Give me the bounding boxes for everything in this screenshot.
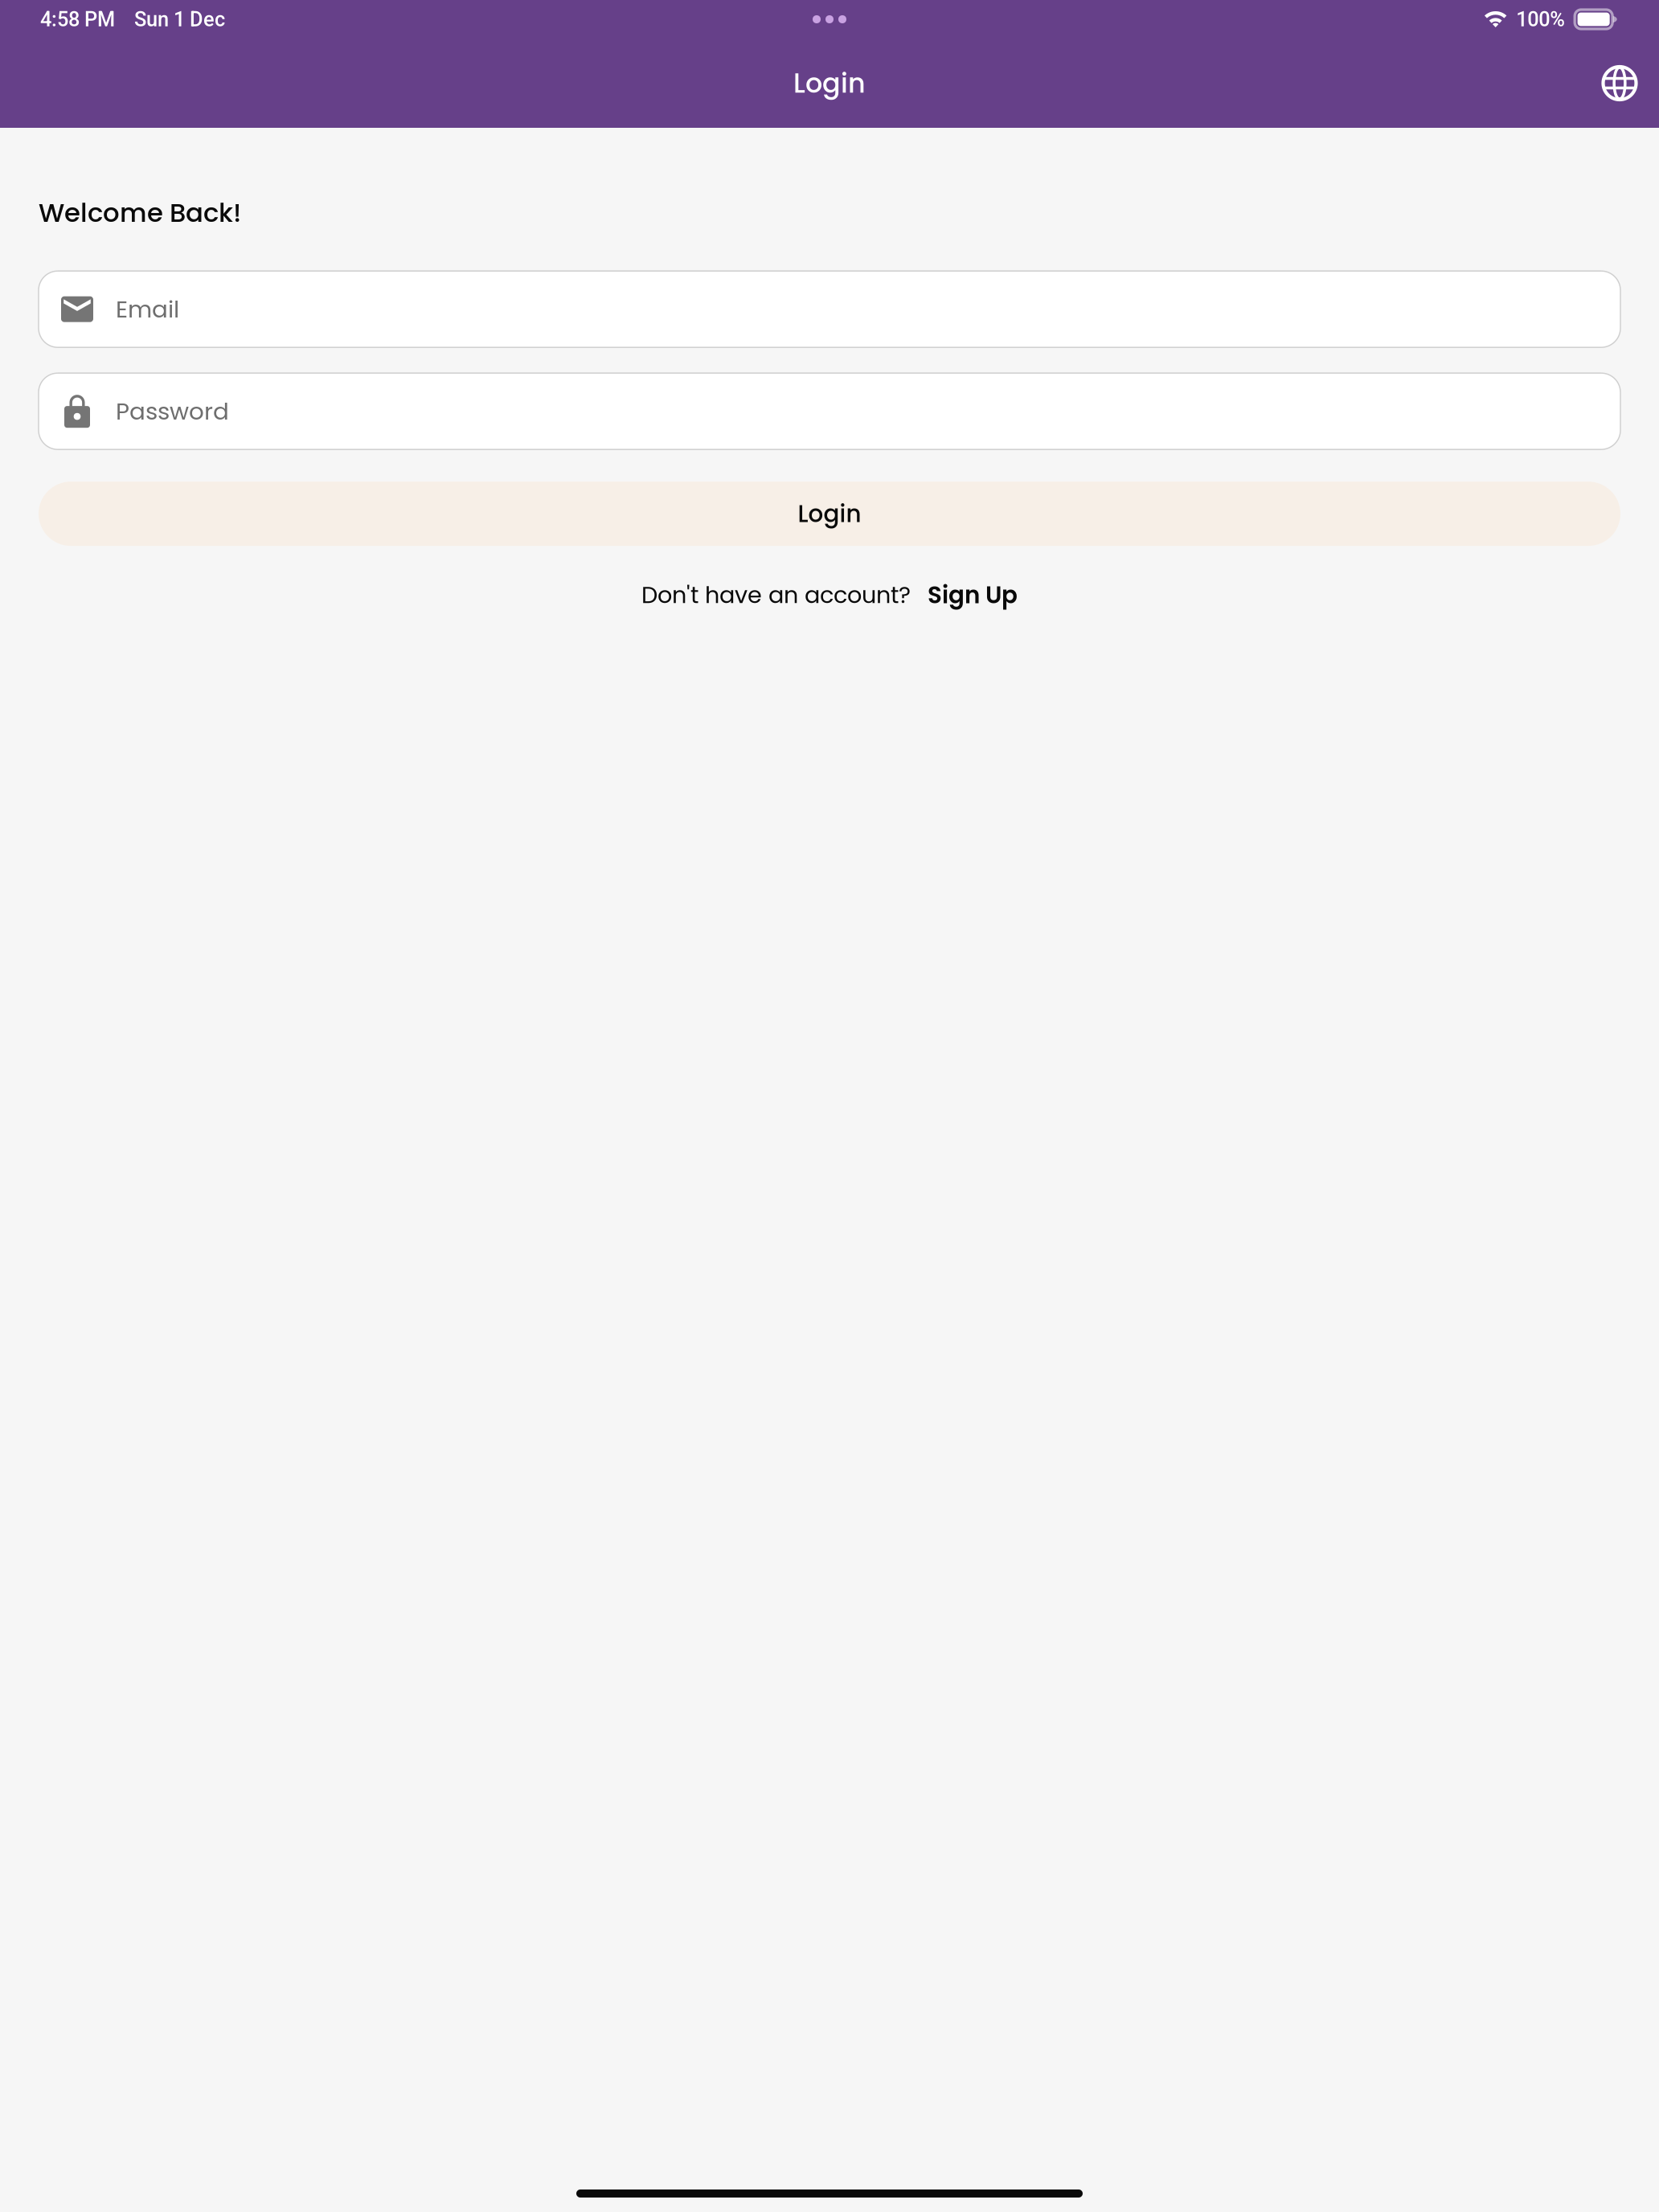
staticText: 4:58 PM — [40, 7, 115, 31]
button[interactable]: Login — [39, 482, 1620, 546]
staticText: Don't have an account? — [641, 579, 911, 611]
staticText: Email — [116, 293, 179, 326]
button[interactable]: Language — [1589, 53, 1650, 114]
staticText: Sign Up — [928, 578, 1018, 611]
staticText: Login — [793, 64, 866, 102]
staticText: Welcome Back! — [39, 195, 241, 231]
staticText: 100% — [1516, 7, 1565, 31]
button[interactable]: Don't have an account? — [39, 575, 1620, 615]
staticText: Password — [116, 395, 229, 428]
staticText: Login — [798, 497, 861, 530]
staticText: Sun 1 Dec — [134, 7, 225, 31]
